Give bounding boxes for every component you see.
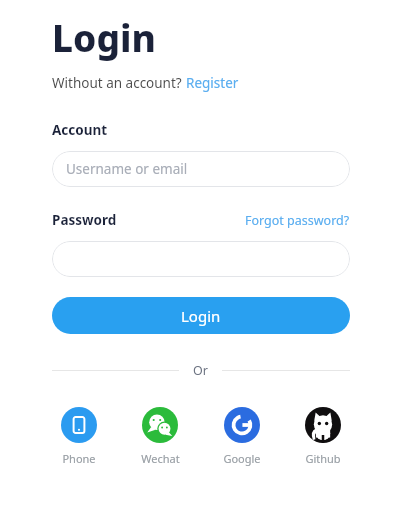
staticText: Username or email (66, 160, 188, 178)
staticText: Phone (62, 451, 96, 466)
button[interactable]: Username or email (52, 151, 350, 187)
button[interactable]: Sign in with Github (296, 407, 350, 466)
button[interactable]: Forgot password? (245, 212, 350, 229)
staticText: Login (181, 306, 221, 326)
staticText: Wechat (141, 451, 180, 466)
staticText: Without an account? (52, 74, 186, 92)
staticText: Github (305, 451, 341, 466)
button[interactable] (52, 241, 350, 277)
staticText: Password (52, 211, 117, 229)
button[interactable]: Sign in with Google (215, 407, 269, 466)
staticText: Or (193, 362, 208, 379)
staticText: Google (223, 451, 261, 466)
staticText: Register (186, 74, 239, 92)
staticText: Account (52, 121, 108, 139)
staticText: Login (52, 12, 156, 62)
button[interactable]: Login (52, 297, 350, 334)
button[interactable]: Sign in with Wechat (133, 407, 187, 466)
button[interactable]: Sign in with Phone (52, 407, 106, 466)
staticText: Forgot password? (245, 212, 350, 229)
button[interactable]: Register (186, 74, 239, 92)
